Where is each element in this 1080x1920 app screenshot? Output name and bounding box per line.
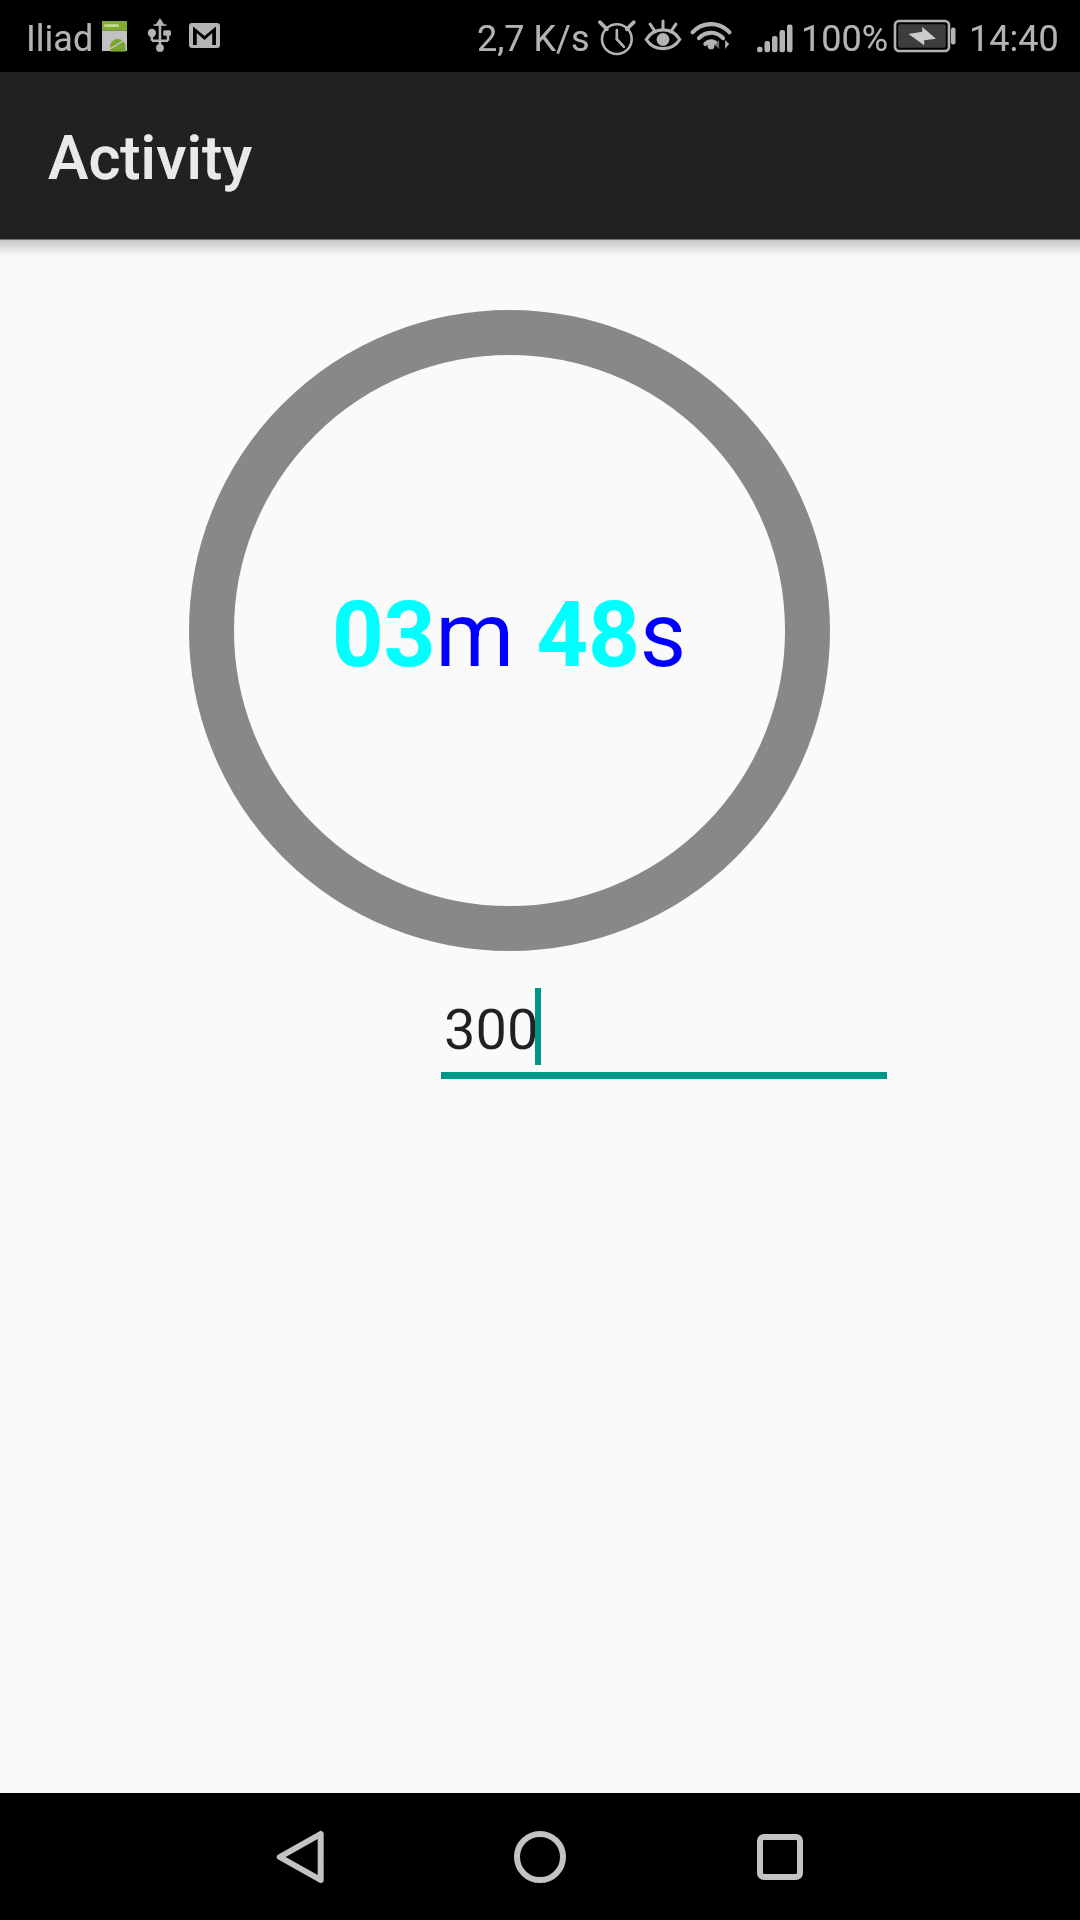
button[interactable]: 300 (441, 987, 887, 1079)
button[interactable]: Home (480, 1797, 600, 1917)
staticText: Activity (48, 122, 253, 193)
staticText: 03m 48s (332, 583, 687, 688)
staticText: 2,7 K/s (477, 18, 590, 60)
staticText: 300 (444, 997, 539, 1063)
staticText: 100% (801, 18, 889, 60)
button[interactable]: Recent apps (720, 1797, 840, 1917)
staticText: Iliad (26, 18, 94, 60)
staticText: 14:40 (969, 18, 1059, 60)
button[interactable]: Back (240, 1797, 360, 1917)
